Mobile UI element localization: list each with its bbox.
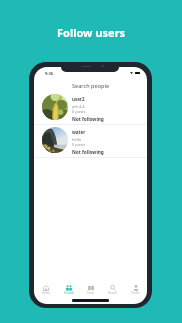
staticText: 0 posts <box>72 142 86 147</box>
button[interactable]: Profile <box>125 279 146 297</box>
staticText: phi 4.4 <box>72 104 85 109</box>
staticText: water <box>72 129 86 135</box>
staticText: user2 <box>72 96 85 102</box>
button[interactable]: Home <box>35 279 56 297</box>
button[interactable]: Feed <box>80 279 101 297</box>
staticText: Not following <box>72 116 104 122</box>
staticText: Feed <box>87 291 94 295</box>
staticText: Search people <box>72 82 110 89</box>
button[interactable]: Friends <box>58 279 79 297</box>
staticText: hello <box>72 137 82 142</box>
button[interactable]: user2 <box>34 92 147 124</box>
staticText: 0 posts <box>72 109 86 114</box>
button[interactable]: water <box>34 125 147 157</box>
staticText: Friends <box>64 291 74 295</box>
staticText: Profile <box>131 291 140 295</box>
button[interactable]: Search <box>102 279 123 297</box>
staticText: Not following <box>72 149 104 155</box>
staticText: Search <box>108 291 117 295</box>
staticText: Home <box>42 291 50 295</box>
staticText: 9:36 <box>45 71 53 76</box>
staticText: Follow users <box>57 25 126 40</box>
